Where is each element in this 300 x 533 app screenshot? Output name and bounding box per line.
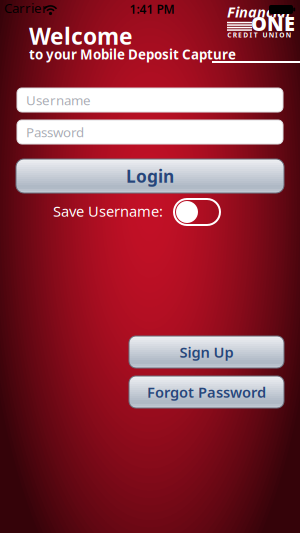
staticText: Financial [227, 2, 290, 21]
button[interactable]: Save Username [174, 199, 220, 225]
staticText: ONE [251, 10, 295, 37]
button[interactable]: Sign Up [129, 336, 284, 368]
staticText: Carrier [4, 0, 48, 17]
staticText: CREDIT UNION [227, 31, 291, 39]
staticText: Login [126, 164, 174, 187]
staticText: Password [26, 123, 84, 141]
staticText: Username [26, 91, 91, 109]
button[interactable]: Username [17, 88, 283, 112]
staticText: to your Mobile Deposit Capture [29, 45, 236, 63]
button[interactable]: Password [17, 120, 283, 144]
staticText: Sign Up [179, 342, 233, 362]
staticText: Welcome [29, 21, 133, 51]
staticText: 1:41 PM [129, 1, 174, 17]
staticText: Forgot Password [147, 382, 266, 402]
staticText: Save Username: [53, 201, 163, 221]
button[interactable]: Forgot Password [129, 376, 284, 408]
button[interactable]: Login [16, 159, 284, 193]
